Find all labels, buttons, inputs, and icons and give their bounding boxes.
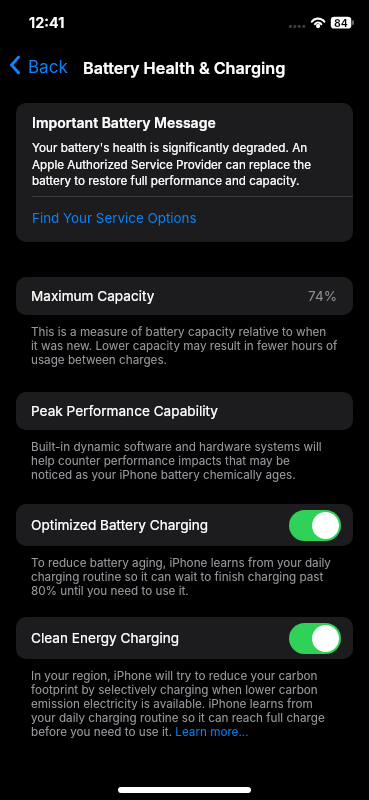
button[interactable]: Clean Energy Charging switch, on xyxy=(289,623,341,654)
button[interactable]: Peak Performance Capability xyxy=(16,392,353,430)
staticText: Your battery's health is significantly d… xyxy=(32,141,311,188)
staticText: 74% xyxy=(308,288,338,304)
button[interactable]: Maximum Capacity xyxy=(16,277,353,315)
staticText: 12:41 xyxy=(29,14,65,32)
button[interactable]: Optimized Battery Charging switch, on xyxy=(289,510,341,541)
staticText: In your region, iPhone will try to reduc… xyxy=(31,669,325,739)
staticText: Battery Health & Charging xyxy=(83,58,286,78)
staticText: Peak Performance Capability xyxy=(31,403,218,419)
staticText: This is a measure of battery capacity re… xyxy=(31,325,338,367)
staticText: Clean Energy Charging xyxy=(31,630,180,646)
button[interactable]: Optimized Battery Charging xyxy=(16,504,353,546)
staticText: Back xyxy=(28,57,68,78)
staticText: Find Your Service Options xyxy=(32,210,197,226)
staticText: Important Battery Message xyxy=(32,114,216,131)
staticText: Maximum Capacity xyxy=(31,288,155,304)
button[interactable]: Clean Energy Charging xyxy=(16,617,353,659)
button[interactable]: Back xyxy=(0,54,76,83)
staticText: Built-in dynamic software and hardware s… xyxy=(31,440,322,482)
staticText: Optimized Battery Charging xyxy=(31,517,209,533)
button[interactable]: Find Your Service Options xyxy=(16,197,353,242)
staticText: To reduce battery aging, iPhone learns f… xyxy=(31,556,331,598)
staticText: 84 xyxy=(334,17,348,30)
